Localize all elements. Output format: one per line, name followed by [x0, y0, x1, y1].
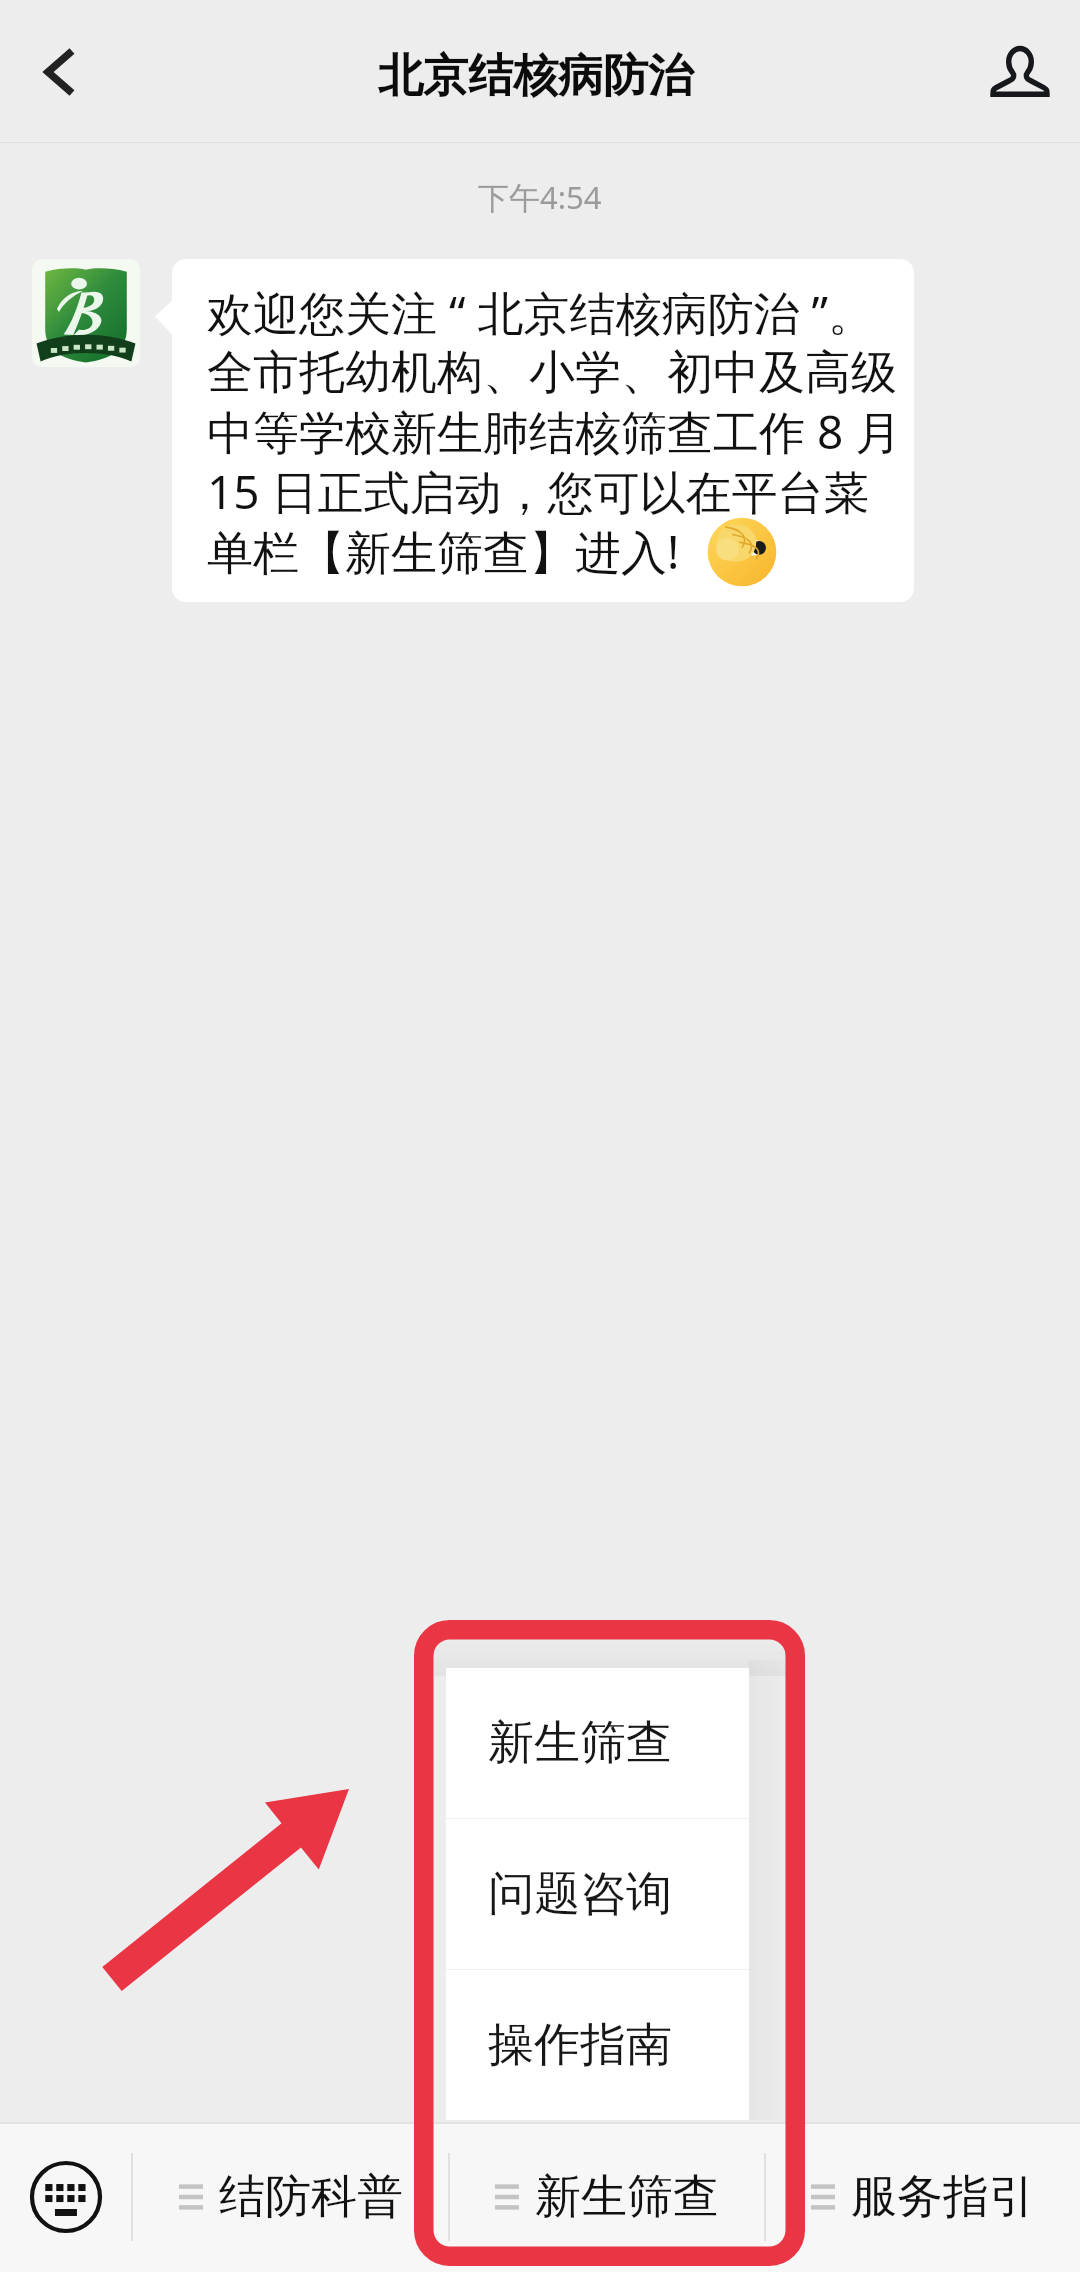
- staticText: 下午4:54: [478, 176, 602, 218]
- button[interactable]: Contact info: [960, 0, 1080, 143]
- button[interactable]: Keyboard: [0, 2122, 131, 2272]
- button[interactable]: Back: [0, 0, 120, 143]
- staticText: 北京结核病防治: [378, 48, 693, 105]
- button[interactable]: 新生筛查: [450, 2122, 764, 2272]
- staticText: 服务指引: [851, 2168, 1035, 2226]
- button[interactable]: 北京结核病防治 avatar: [32, 259, 140, 367]
- button[interactable]: 新生筛查: [446, 1668, 749, 1818]
- staticText: 新生筛查: [488, 1714, 672, 1772]
- button[interactable]: 服务指引: [766, 2122, 1080, 2272]
- staticText: 操作指南: [488, 2016, 672, 2074]
- button[interactable]: 操作指南: [446, 1970, 749, 2120]
- staticText: 新生筛查: [535, 2168, 719, 2226]
- staticText: 问题咨询: [488, 1865, 672, 1923]
- button[interactable]: 问题咨询: [446, 1819, 749, 1969]
- button[interactable]: 结防科普: [133, 2122, 448, 2272]
- staticText: 欢迎您关注 “ 北京结核病防治 ”。 全市托幼机构、小学、初中及高级 中等学校新…: [207, 281, 902, 582]
- staticText: 结防科普: [219, 2168, 403, 2226]
